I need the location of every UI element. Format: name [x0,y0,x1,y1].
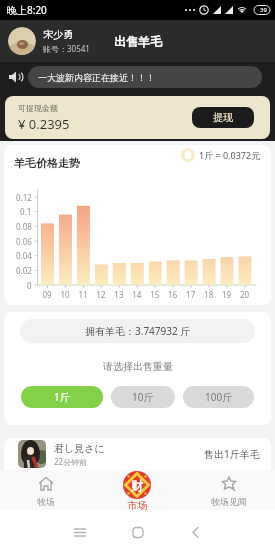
staticText: 100斤 [205,390,233,404]
staticText: 拥有羊毛：3.747932 斤 [85,324,191,338]
staticText: 1斤 = 0.0372元 [199,149,261,161]
staticText: 39 [260,6,267,14]
staticText: 财 [131,478,143,493]
staticText: 1斤 [54,390,70,404]
staticText: 宋少勇 [43,28,73,41]
staticText: 晚上8:20 [7,3,47,17]
staticText: 请选择出售重量 [103,360,173,373]
staticText: 10斤 [132,390,154,404]
staticText: 售出1斤羊毛 [204,447,260,461]
button[interactable]: 1斤 [21,386,103,408]
button[interactable]: 牧场 [0,470,91,510]
button[interactable]: 提现 [192,107,254,128]
staticText: 一大波新内容正在接近！！！ [38,72,155,83]
button[interactable]: 牧场见闻 [183,470,275,510]
staticText: 可提现金额 [18,103,58,113]
staticText: 市场 [127,499,147,510]
staticText: ¥ 0.2395 [18,115,70,133]
button[interactable]: 100斤 [183,386,254,408]
staticText: 账号：30541 [43,43,90,54]
staticText: 羊毛价格走势 [14,156,80,170]
staticText: 出售羊毛 [114,34,162,49]
button[interactable]: 10斤 [111,386,175,408]
staticText: 提现 [213,111,233,124]
staticText: 22分钟前 [54,456,88,467]
staticText: 君し見さに [54,442,105,455]
staticText: 牧场见闻 [211,496,247,507]
button[interactable]: 君し見さに [4,438,271,470]
staticText: 牧场 [37,496,55,507]
button[interactable]: 财 [91,470,183,510]
